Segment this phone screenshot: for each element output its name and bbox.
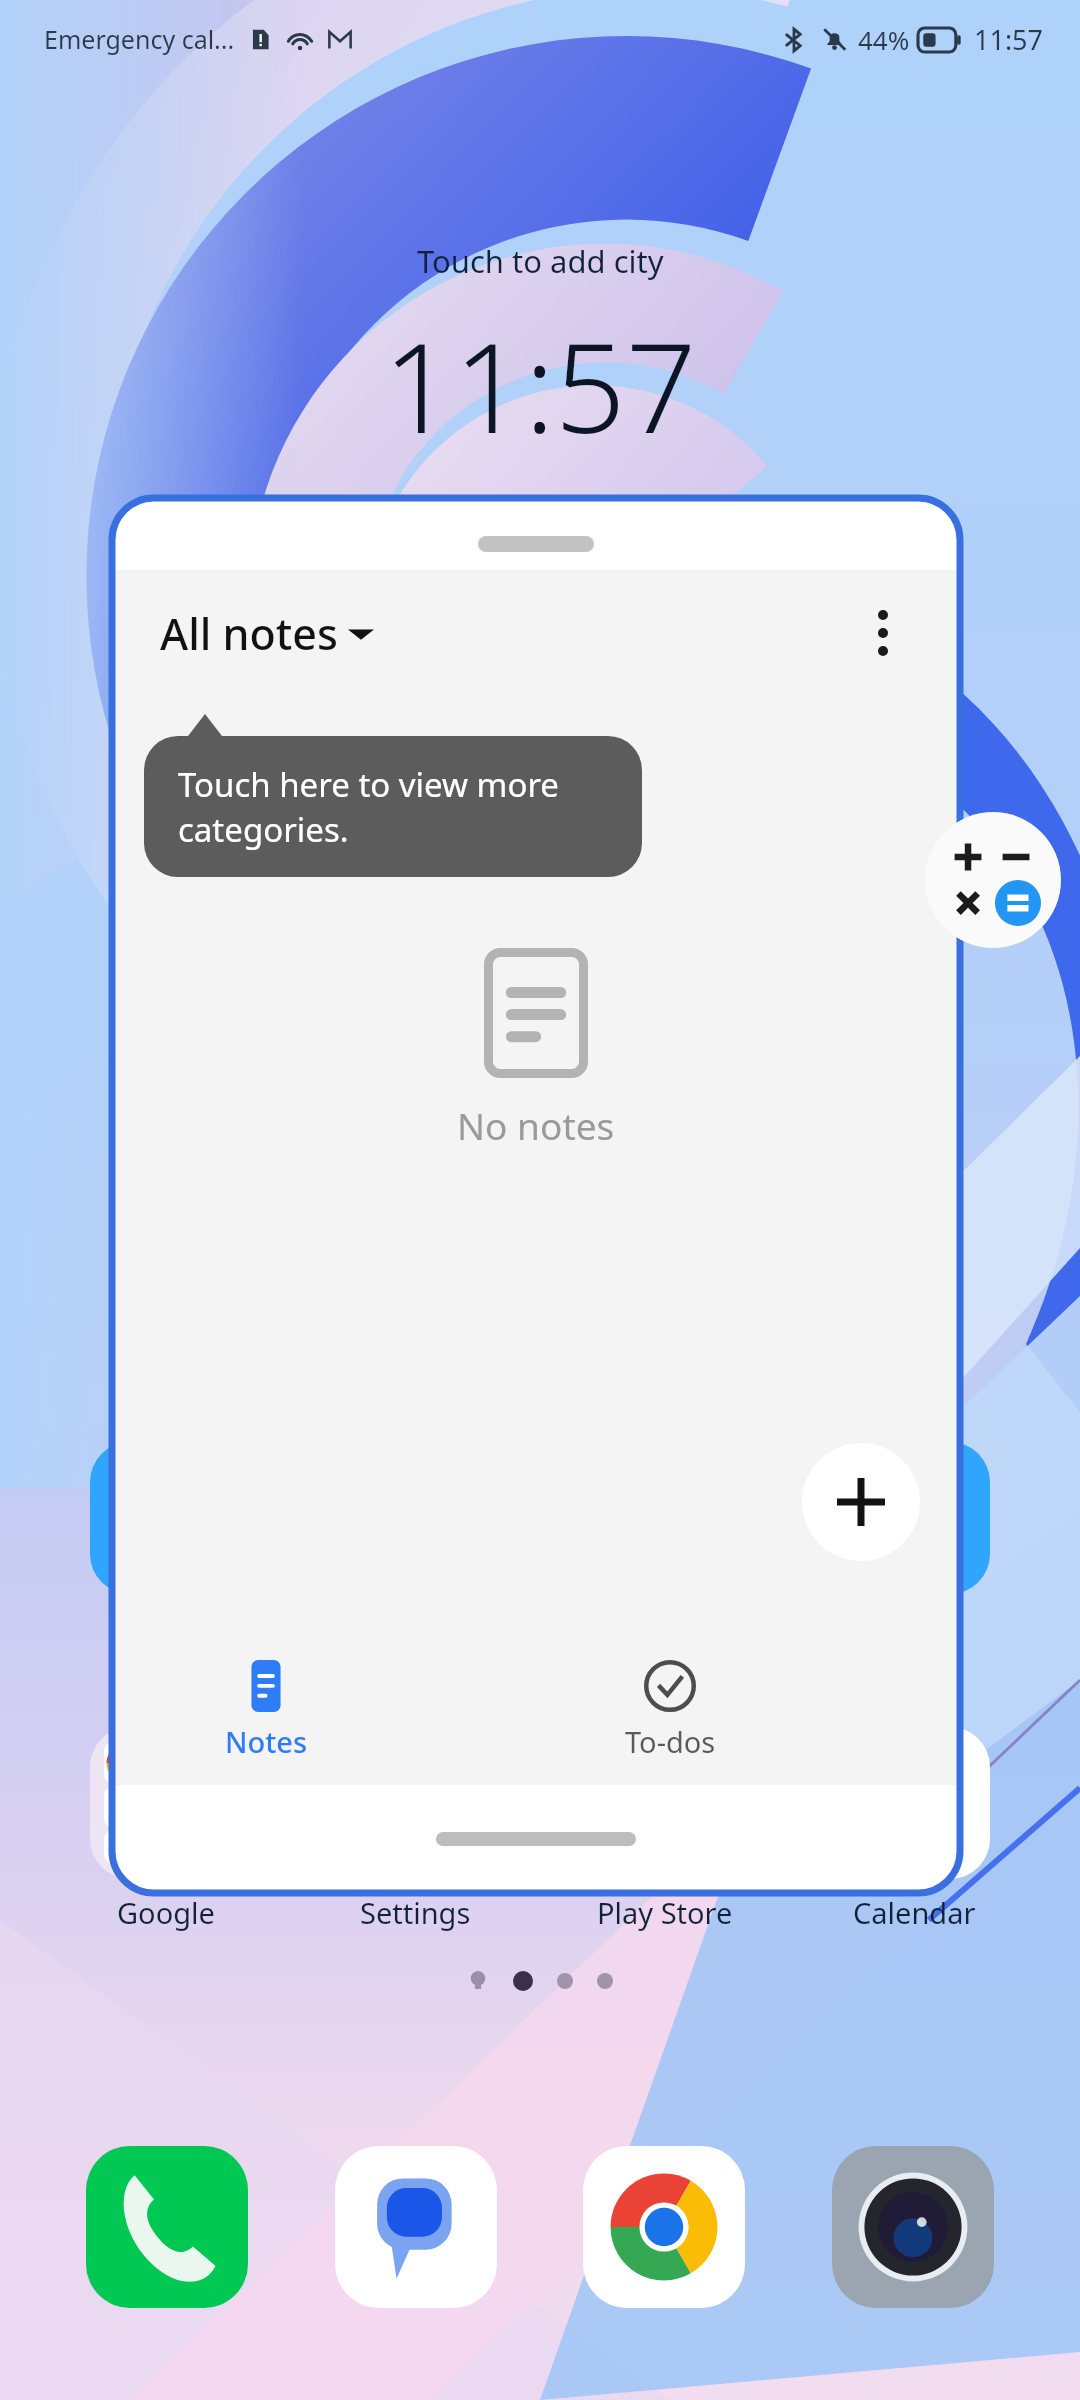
button[interactable]: Add note [802,1443,920,1561]
button[interactable]: Touch here to view more categories. [144,736,642,877]
staticText: 11:57 [974,21,1044,58]
staticText: 44% [858,22,910,57]
button[interactable]: App [335,2146,497,2308]
button[interactable]: 11:57 [383,300,697,469]
staticText: Settings [360,1893,471,1932]
button[interactable]: To-dos [580,1660,760,1761]
staticText: To-dos [625,1722,716,1761]
button[interactable]: Settings [331,1727,499,1932]
button[interactable] [478,536,594,552]
button[interactable]: App [583,2146,745,2308]
button[interactable] [436,1832,636,1846]
button[interactable]: 14 [830,1727,998,1932]
button[interactable]: More options [848,598,918,668]
button[interactable]: Calculator [925,812,1061,948]
button[interactable]: App [86,2146,248,2308]
staticText: No notes [457,1100,615,1150]
button[interactable]: All notes [160,604,374,663]
button[interactable]: App [832,2146,994,2308]
button[interactable]: Touch to add city [417,240,664,282]
staticText: Emergency cal... [44,22,235,56]
button[interactable]: My [82,1442,250,1647]
staticText: Google [117,1893,215,1932]
button[interactable]: Notes [176,1660,356,1761]
staticText: Calendar [853,1893,976,1932]
button[interactable]: Google [82,1727,250,1932]
staticText: 14 [871,1751,958,1855]
button[interactable]: y [830,1442,998,1647]
staticText: Touch here to view more categories. [178,762,559,851]
staticText: All notes [160,604,338,663]
staticText: Notes [225,1722,308,1761]
button[interactable]: Play Store [581,1727,749,1932]
staticText: Play Store [597,1893,733,1932]
